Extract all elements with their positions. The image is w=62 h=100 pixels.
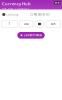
staticText: Live Rate Converter [2, 7, 29, 10]
staticText: Currency [6, 13, 18, 16]
button[interactable]: USD [19, 20, 33, 27]
button[interactable]: Swap currencies [35, 20, 44, 27]
button[interactable]: EUR [46, 20, 60, 27]
staticText: USD [24, 22, 29, 26]
button[interactable]: 1 [1, 20, 17, 27]
staticText: EUR [51, 22, 56, 26]
button[interactable]: Convert Now [17, 32, 45, 39]
staticText: Metals & Oil [34, 13, 50, 16]
staticText: Currency Hub [2, 1, 31, 6]
staticText: Convert Now [24, 33, 42, 37]
button[interactable]: Currency [2, 13, 18, 16]
button[interactable]: More options [54, 1, 60, 4]
staticText: 1 [8, 22, 10, 26]
button[interactable]: Metals & Oil [30, 13, 50, 16]
